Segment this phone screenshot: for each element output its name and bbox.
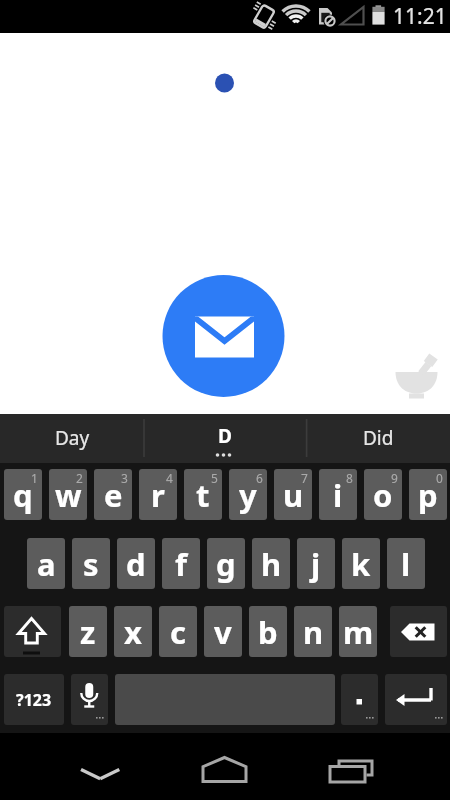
staticText: s [83,543,99,585]
staticText: u [283,474,304,516]
staticText: 3 [121,470,128,486]
staticText: v [214,611,232,653]
staticText: g [216,543,236,585]
button[interactable]: y [229,469,267,520]
staticText: k [351,543,371,585]
button[interactable] [385,674,447,725]
button[interactable]: g [207,538,245,589]
staticText: ?123 [16,689,52,711]
staticText: f [175,543,187,585]
staticText: p [418,474,438,516]
button[interactable] [71,674,108,725]
button[interactable]: m [339,606,377,657]
staticText: i [333,474,343,516]
staticText: e [104,474,123,516]
button[interactable]: s [72,538,110,589]
button[interactable]: D [152,416,298,456]
staticText: Day [55,425,90,451]
button[interactable]: c [159,606,197,657]
staticText: 6 [256,470,263,486]
button[interactable]: a [27,538,65,589]
button[interactable]: v [204,606,242,657]
button[interactable]: e [94,469,132,520]
staticText: 1 [31,470,38,486]
staticText: q [13,474,33,516]
button[interactable]: Did [314,416,442,460]
button[interactable]: ?123 [4,674,64,725]
button[interactable]: Day [8,416,136,460]
button[interactable]: z [69,606,107,657]
staticText: r [151,474,165,516]
staticText: c [170,611,186,653]
button[interactable]: h [252,538,290,589]
button[interactable]: i [319,469,357,520]
staticText: m [343,611,374,653]
staticText: n [303,611,324,653]
staticText: D [218,423,232,449]
staticText: x [124,611,142,653]
button[interactable]: l [387,538,425,589]
button[interactable] [68,745,132,793]
button[interactable]: r [139,469,177,520]
button[interactable]: d [117,538,155,589]
button[interactable]: n [294,606,332,657]
button[interactable] [390,606,447,657]
button[interactable]: j [297,538,335,589]
staticText: 5 [211,470,218,486]
staticText: 2 [76,470,83,486]
button[interactable]: x [114,606,152,657]
button[interactable]: k [342,538,380,589]
button[interactable] [192,745,256,793]
button[interactable]: u [274,469,312,520]
button[interactable]: b [249,606,287,657]
staticText: 11:21 [393,2,447,31]
button[interactable]: p [409,469,447,520]
staticText: 7 [301,470,308,486]
staticText: 8 [346,470,353,486]
button[interactable]: t [184,469,222,520]
button[interactable] [162,275,284,397]
staticText: o [373,474,393,516]
staticText: h [261,543,282,585]
button[interactable]: f [162,538,200,589]
staticText: w [55,474,82,516]
staticText: a [37,543,56,585]
button[interactable]: o [364,469,402,520]
staticText: 9 [391,470,398,486]
staticText: l [401,543,411,585]
button[interactable] [319,745,383,793]
button[interactable]: q [4,469,42,520]
staticText: 0 [436,470,443,486]
staticText: 4 [166,470,173,486]
staticText: d [126,543,146,585]
staticText: j [311,543,321,585]
staticText: z [80,611,96,653]
button[interactable] [4,606,61,657]
staticText: t [196,474,210,516]
staticText: b [258,611,278,653]
staticText: y [239,474,257,516]
button[interactable] [341,674,378,725]
staticText: Did [363,425,394,451]
button[interactable]: w [49,469,87,520]
